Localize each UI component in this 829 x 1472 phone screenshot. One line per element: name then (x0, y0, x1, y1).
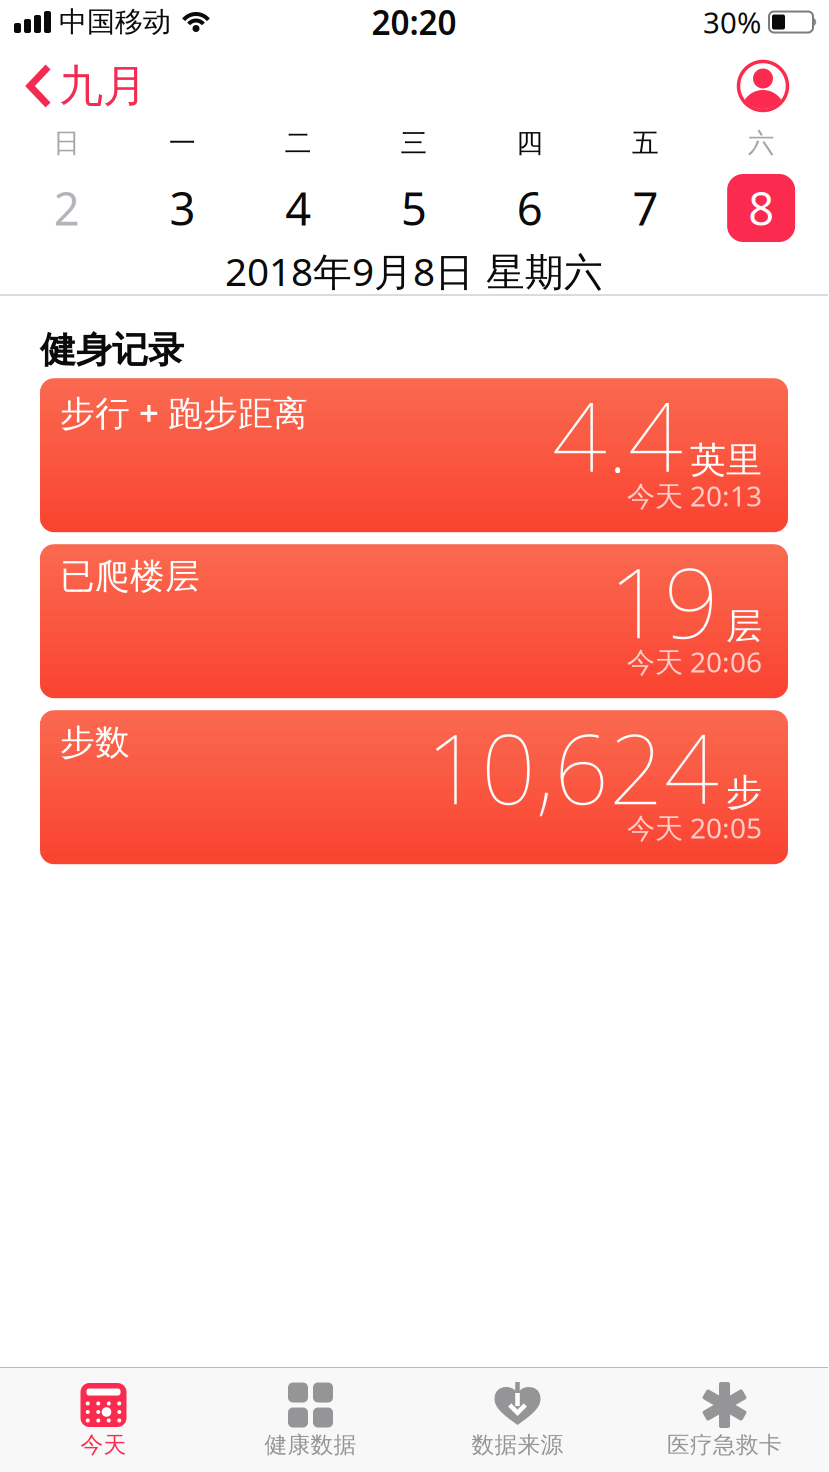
staticText: 三 (400, 127, 427, 159)
staticText: 中国移动 (59, 5, 171, 39)
button[interactable]: 个人资料 (736, 59, 828, 113)
staticText: 19 (609, 537, 719, 665)
staticText: 3 (170, 178, 196, 238)
button[interactable]: 健康数据 (207, 1382, 414, 1459)
staticText: 健康数据 (264, 1431, 356, 1459)
staticText: 今天 (80, 1431, 126, 1459)
staticText: 层 (726, 604, 762, 648)
staticText: 步行 + 跑步距离 (60, 389, 308, 435)
button[interactable]: 3 (125, 178, 240, 238)
staticText: 健身记录 (40, 328, 184, 372)
staticText: 4 (285, 178, 311, 238)
button[interactable]: 6 (472, 178, 588, 238)
button[interactable]: 2 (9, 178, 125, 238)
staticText: 四 (516, 127, 543, 159)
staticText: 8 (748, 178, 774, 238)
staticText: 步 (726, 770, 762, 814)
staticText: 已爬楼层 (60, 555, 200, 598)
staticText: 10,624 (426, 703, 719, 831)
button[interactable]: 今天 (0, 1382, 207, 1459)
staticText: 5 (401, 178, 427, 238)
staticText: 医疗急救卡 (667, 1431, 782, 1459)
button[interactable]: 已爬楼层 (40, 544, 788, 698)
staticText: 7 (632, 178, 658, 238)
staticText: 6 (517, 178, 543, 238)
button[interactable]: 医疗急救卡 (621, 1382, 828, 1459)
staticText: 20:20 (371, 0, 456, 44)
staticText: 今天 20:06 (627, 643, 762, 680)
staticText: 日 (53, 127, 80, 159)
staticText: 数据来源 (471, 1431, 563, 1459)
staticText: 今天 20:05 (627, 809, 762, 846)
staticText: 二 (285, 127, 312, 159)
staticText: 英里 (690, 438, 762, 482)
staticText: 2 (54, 178, 80, 238)
staticText: 步数 (60, 721, 130, 764)
staticText: 4.4 (552, 371, 683, 499)
staticText: 2018年9月8日 星期六 (225, 245, 603, 297)
button[interactable]: 8 (703, 174, 819, 242)
button[interactable]: 步行 + 跑步距离 (40, 378, 788, 532)
staticText: 一 (169, 127, 196, 159)
button[interactable]: 4 (240, 178, 356, 238)
staticText: 六 (748, 127, 775, 159)
button[interactable]: 九月 (0, 59, 147, 113)
staticText: 30% (703, 2, 761, 41)
staticText: 五 (632, 127, 659, 159)
button[interactable]: 5 (356, 178, 472, 238)
button[interactable]: 数据来源 (414, 1382, 621, 1459)
button[interactable]: 7 (588, 178, 703, 238)
button[interactable]: 步数 (40, 710, 788, 864)
staticText: 九月 (59, 59, 147, 113)
staticText: 今天 20:13 (627, 477, 762, 514)
